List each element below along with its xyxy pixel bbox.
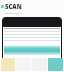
button[interactable]: Card four — [48, 58, 63, 71]
staticText: SCAN — [5, 3, 22, 11]
button[interactable]: SCAN — [1, 3, 64, 16]
staticText: Lift and Photo — [5, 11, 22, 14]
